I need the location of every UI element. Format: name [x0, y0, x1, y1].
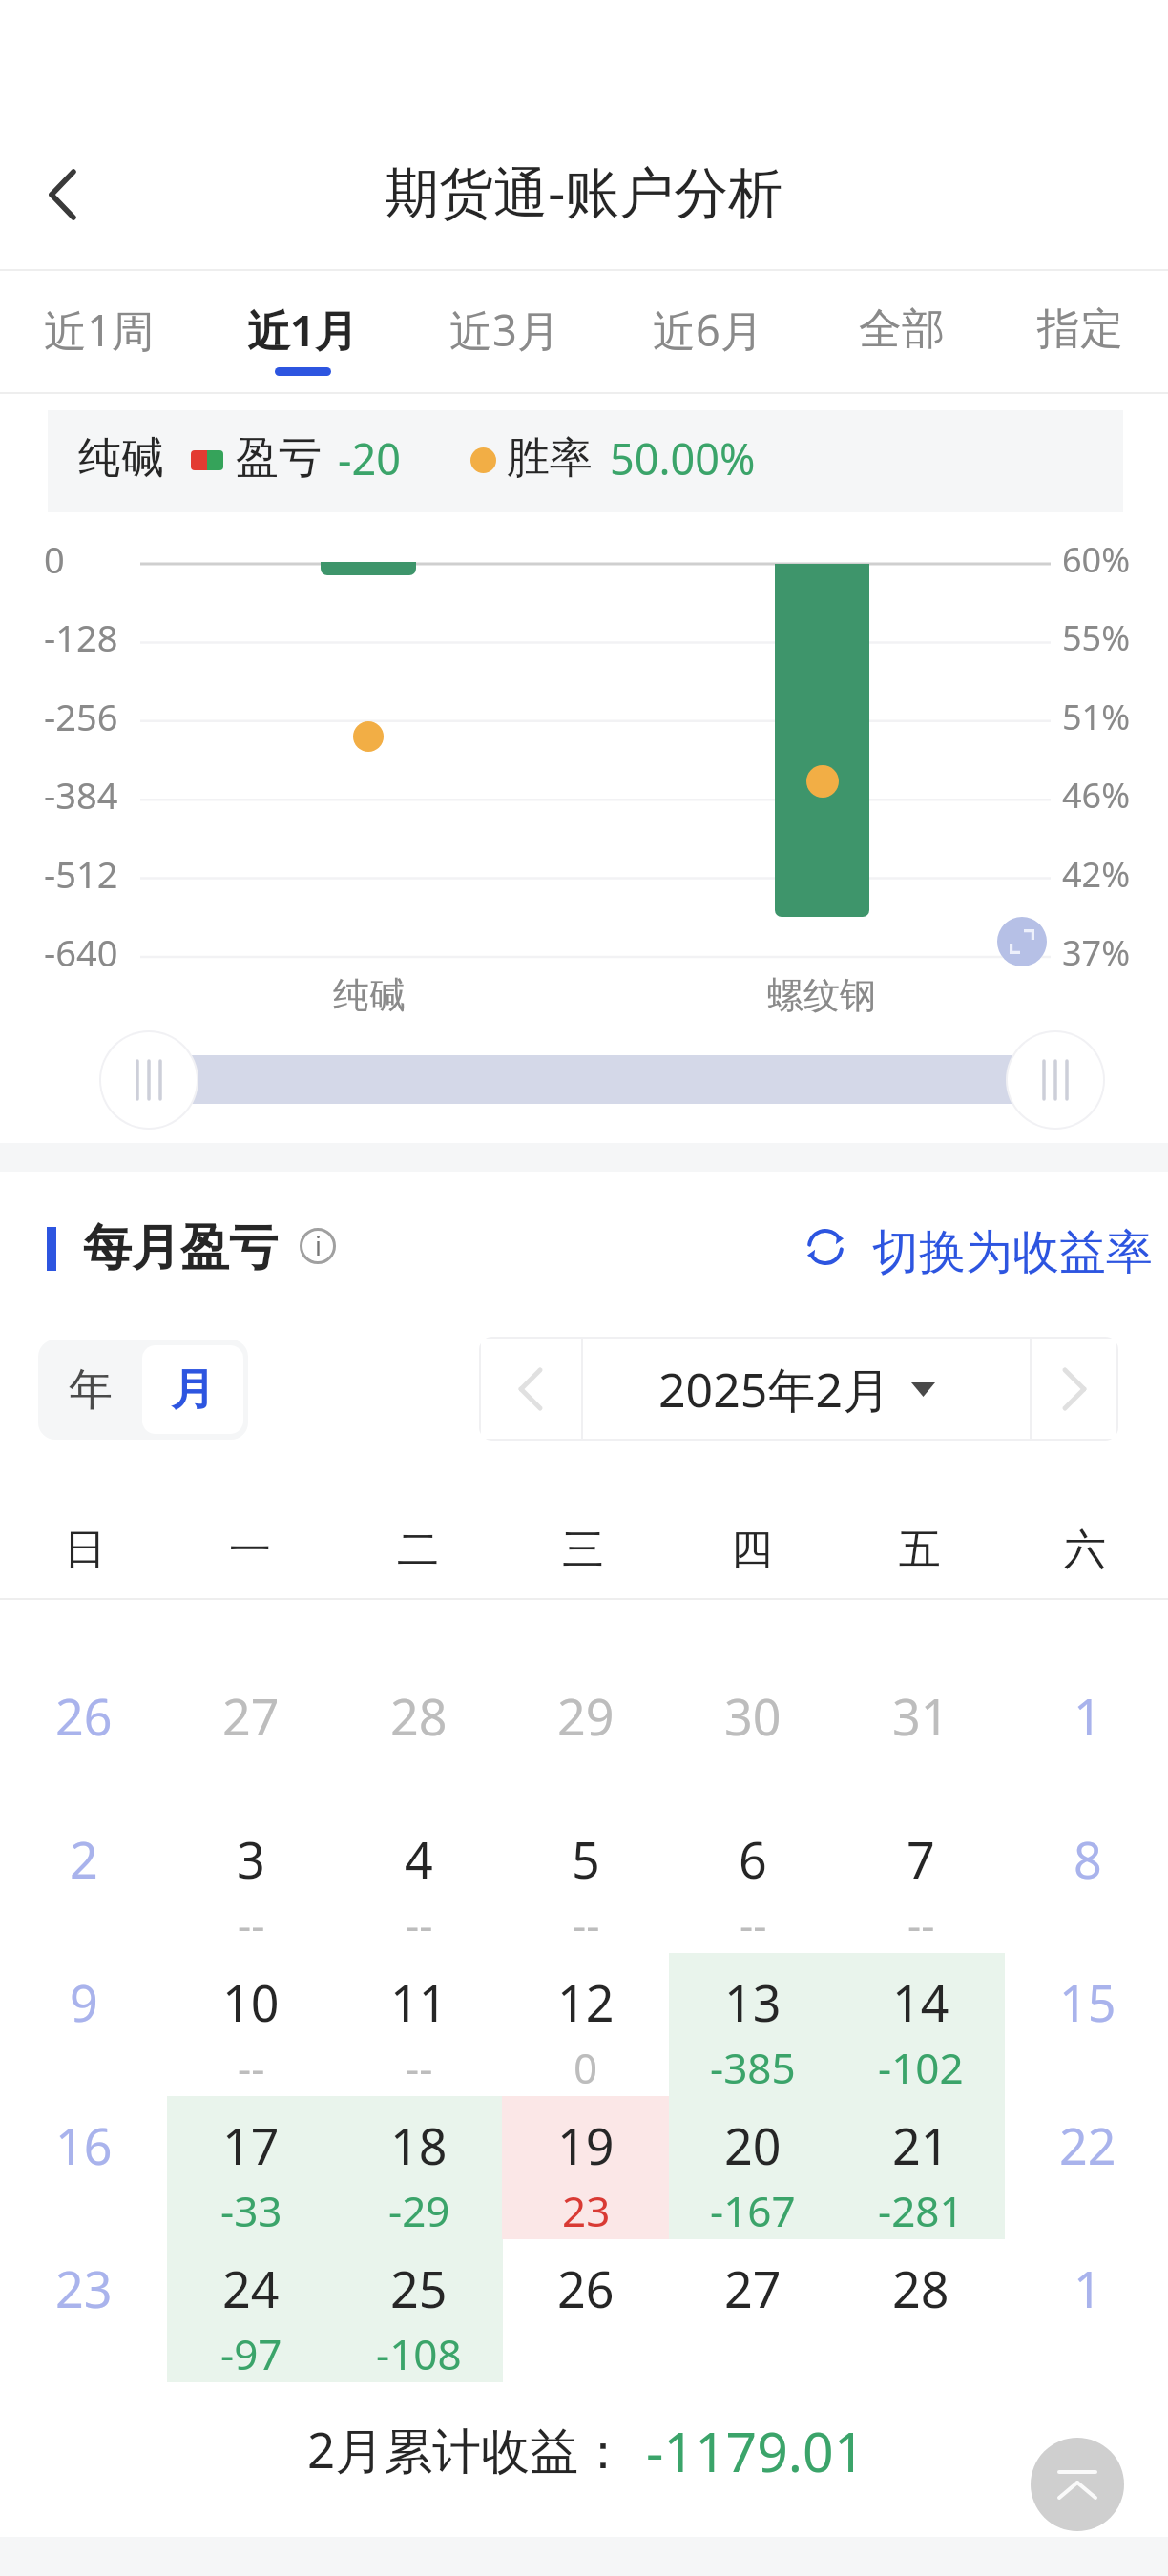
staticText: 日 — [64, 1524, 106, 1576]
button[interactable]: 31 — [837, 1667, 1005, 1810]
staticText: -102 — [878, 2039, 964, 2096]
staticText: 2月累计收益： — [307, 2416, 628, 2483]
staticText: 指定 — [1037, 302, 1123, 357]
button[interactable]: 全部 — [806, 271, 997, 391]
staticText: 17 — [222, 2111, 280, 2179]
button[interactable]: 12 — [502, 1953, 670, 2096]
staticText: 20 — [724, 2111, 782, 2179]
staticText: -- — [907, 1896, 935, 1953]
staticText: -385 — [710, 2039, 796, 2096]
button[interactable]: 29 — [502, 1667, 670, 1810]
button[interactable]: 近3月 — [404, 271, 606, 391]
button[interactable]: 23 — [0, 2239, 168, 2382]
staticText: -- — [238, 1896, 265, 1953]
button[interactable]: 4 — [335, 1810, 503, 1953]
staticText: -512 — [44, 849, 118, 899]
button[interactable]: 30 — [669, 1667, 837, 1810]
button[interactable]: 3 — [167, 1810, 335, 1953]
staticText: 11 — [390, 1968, 448, 2036]
button[interactable]: 切换为收益率 — [802, 1210, 1133, 1284]
button[interactable]: 1 — [1004, 2239, 1168, 2382]
staticText: -- — [406, 1896, 433, 1953]
button[interactable]: 9 — [0, 1953, 168, 2096]
staticText: 0 — [574, 2039, 598, 2096]
button[interactable]: Scroll handle — [1006, 1030, 1105, 1130]
button[interactable]: Fullscreen — [997, 917, 1047, 966]
button[interactable]: 25 — [335, 2239, 503, 2382]
button[interactable]: 22 — [1004, 2096, 1168, 2239]
staticText: 14 — [892, 1968, 949, 2036]
button[interactable]: 6 — [669, 1810, 837, 1953]
staticText: 一 — [229, 1524, 271, 1576]
staticText: -1179.01 — [646, 2414, 866, 2488]
button[interactable]: Next month — [1030, 1337, 1118, 1441]
staticText: 纯碱 — [78, 431, 164, 486]
button[interactable]: Previous month — [479, 1337, 581, 1441]
staticText: 6 — [739, 1825, 767, 1893]
button[interactable]: Back — [19, 152, 105, 238]
button[interactable]: 2 — [0, 1810, 168, 1953]
staticText: 二 — [397, 1524, 439, 1576]
staticText: -33 — [220, 2182, 282, 2239]
button[interactable]: Info — [300, 1228, 336, 1264]
staticText: i — [315, 1228, 322, 1263]
button[interactable]: 15 — [1004, 1953, 1168, 2096]
staticText: 纯碱 — [333, 972, 406, 1018]
staticText: 近1周 — [44, 301, 155, 359]
button[interactable]: 7 — [837, 1810, 1005, 1953]
staticText: 4 — [405, 1825, 433, 1893]
staticText: 23 — [562, 2182, 611, 2239]
button[interactable]: 27 — [669, 2239, 837, 2382]
button[interactable]: 11 — [335, 1953, 503, 2096]
staticText: 五 — [899, 1524, 941, 1576]
staticText: 28 — [892, 2254, 949, 2322]
button[interactable]: 28 — [837, 2239, 1005, 2382]
button[interactable]: 年 — [38, 1340, 143, 1440]
staticText: 12 — [557, 1968, 615, 2036]
button[interactable]: 指定 — [991, 271, 1168, 391]
staticText: 18 — [390, 2111, 448, 2179]
button[interactable]: 14 — [837, 1953, 1005, 2096]
button[interactable]: 28 — [335, 1667, 503, 1810]
button[interactable]: 16 — [0, 2096, 168, 2239]
button[interactable]: Scroll to top — [1031, 2438, 1124, 2531]
button[interactable]: 1 — [1004, 1667, 1168, 1810]
staticText: 7 — [907, 1825, 935, 1893]
staticText: 24 — [222, 2254, 280, 2322]
button[interactable]: 近1月 — [201, 271, 404, 391]
staticText: -281 — [878, 2182, 964, 2239]
staticText: 胜率 — [507, 431, 593, 486]
button[interactable]: 近1周 — [0, 271, 200, 391]
button[interactable]: 27 — [167, 1667, 335, 1810]
button[interactable]: Scroll handle — [99, 1030, 198, 1130]
button[interactable]: 18 — [335, 2096, 503, 2239]
staticText: 每月盈亏 — [83, 1217, 278, 1278]
staticText: 27 — [222, 1682, 280, 1750]
staticText: 盈亏 — [236, 431, 322, 486]
staticText: 22 — [1059, 2111, 1116, 2179]
button[interactable]: 24 — [167, 2239, 335, 2382]
button[interactable]: 17 — [167, 2096, 335, 2239]
button[interactable]: 19 — [502, 2096, 670, 2239]
staticText: 切换为收益率 — [872, 1223, 1153, 1282]
button[interactable]: 26 — [0, 1667, 168, 1810]
staticText: 26 — [557, 2254, 615, 2322]
button[interactable]: 20 — [669, 2096, 837, 2239]
staticText: 25 — [390, 2254, 448, 2322]
button[interactable]: 13 — [669, 1953, 837, 2096]
button[interactable]: 21 — [837, 2096, 1005, 2239]
button[interactable]: 近6月 — [607, 271, 809, 391]
staticText: -29 — [388, 2182, 450, 2239]
button[interactable]: 26 — [502, 2239, 670, 2382]
staticText: -167 — [710, 2182, 796, 2239]
button[interactable]: 8 — [1004, 1810, 1168, 1953]
button[interactable]: 月 — [142, 1345, 243, 1434]
staticText: 月 — [171, 1362, 215, 1418]
staticText: 27 — [724, 2254, 782, 2322]
button[interactable]: 10 — [167, 1953, 335, 2096]
staticText: 28 — [390, 1682, 448, 1750]
button[interactable]: 2025年2月 — [581, 1337, 1030, 1441]
button[interactable]: 5 — [502, 1810, 670, 1953]
staticText: 55% — [1062, 614, 1131, 661]
staticText: -97 — [220, 2325, 282, 2382]
